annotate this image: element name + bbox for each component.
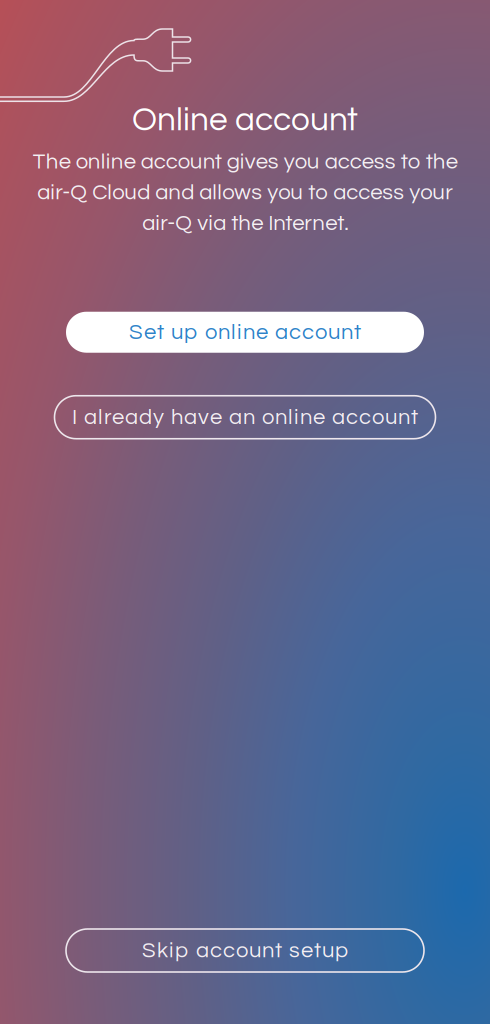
- staticText: Set up online account: [129, 321, 361, 344]
- button[interactable]: Skip account setup: [66, 929, 424, 972]
- staticText: The online account gives you access to t…: [32, 150, 457, 235]
- staticText: I already have an online account: [72, 406, 418, 429]
- button[interactable]: Set up online account: [66, 312, 424, 353]
- staticText: Online account: [132, 103, 358, 137]
- button[interactable]: I already have an online account: [54, 396, 435, 439]
- staticText: Skip account setup: [142, 939, 348, 962]
